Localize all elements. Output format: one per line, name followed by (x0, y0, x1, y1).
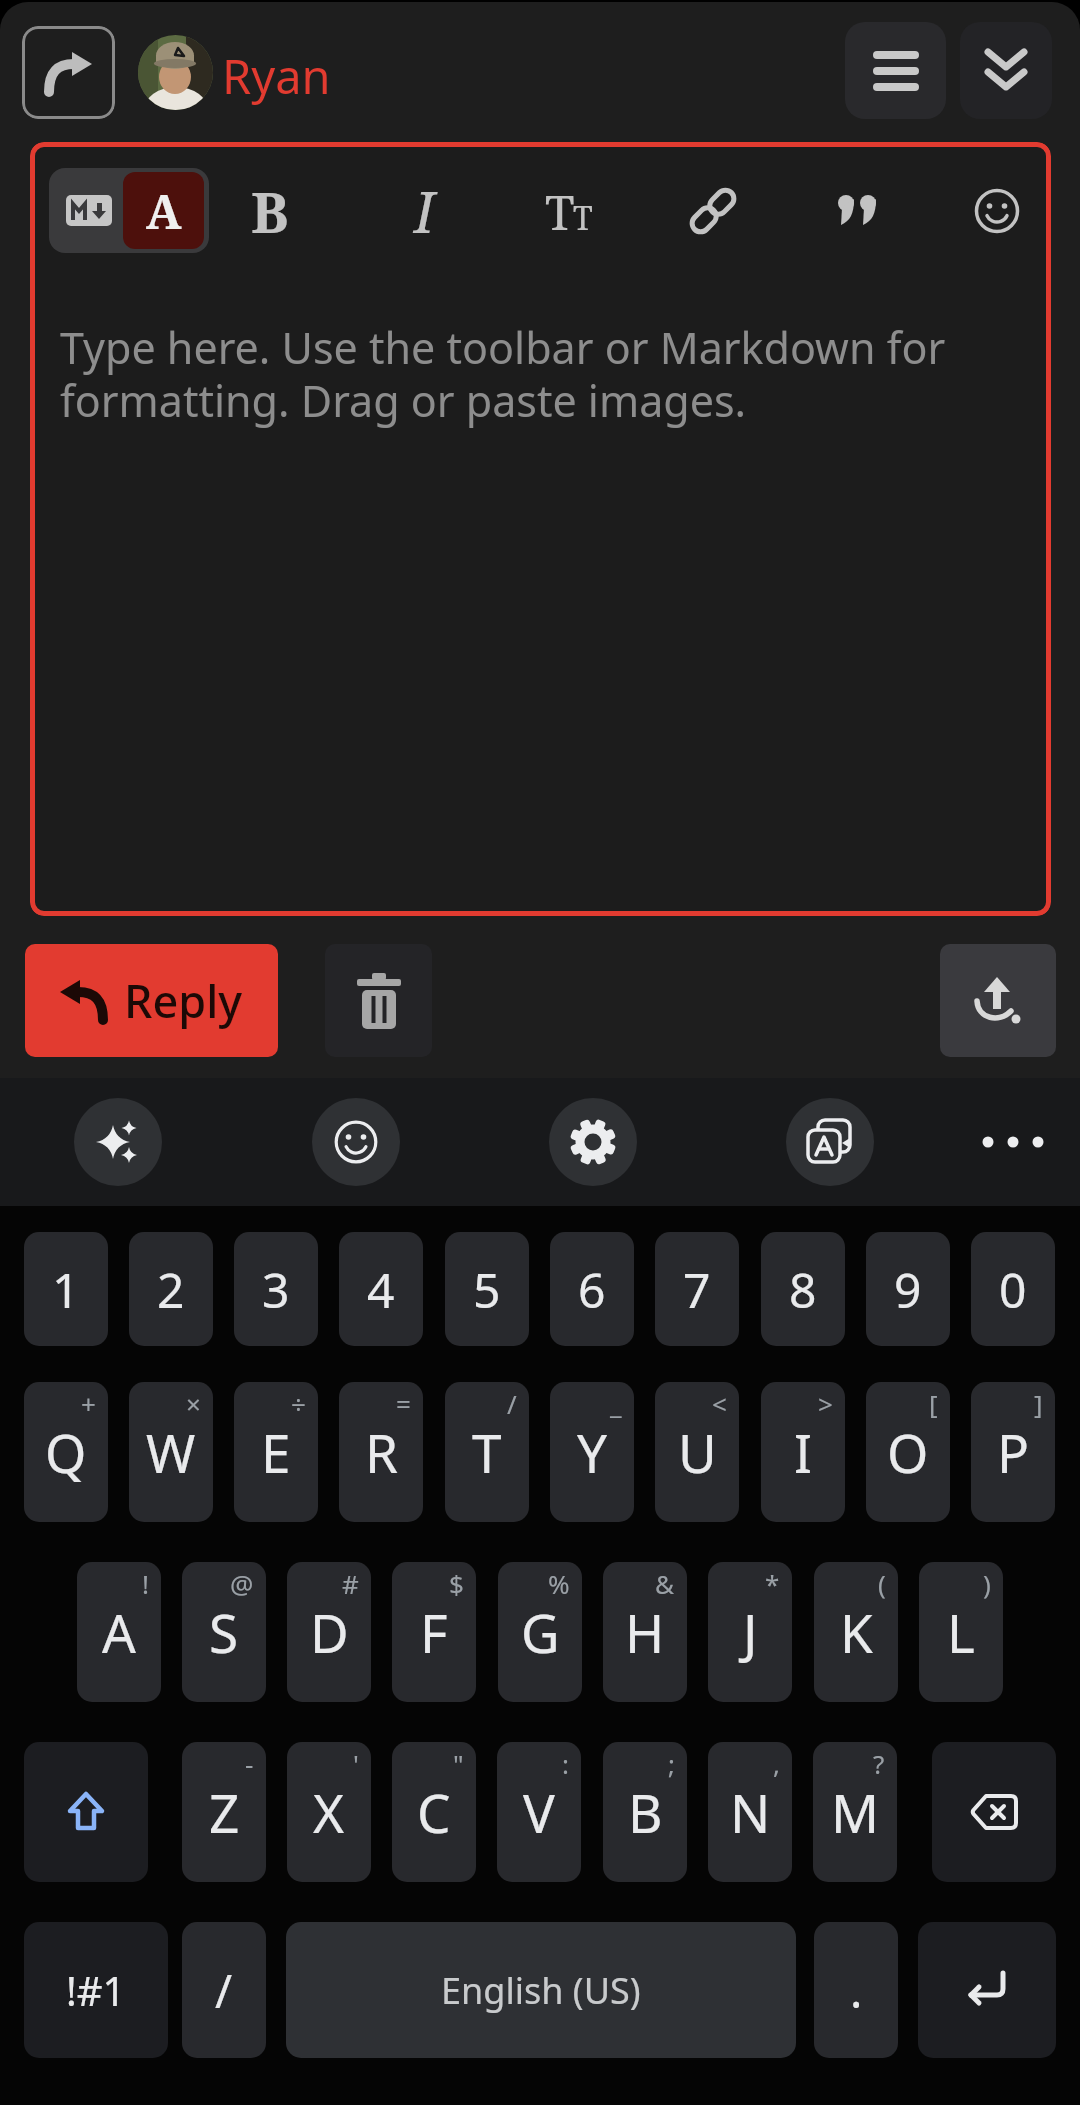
staticText: ] (1034, 1386, 1043, 1421)
button[interactable]: 0 (971, 1232, 1055, 1346)
button[interactable] (786, 1098, 874, 1186)
button[interactable] (138, 35, 213, 110)
button[interactable]: T (526, 167, 614, 255)
button[interactable]: C (392, 1742, 476, 1882)
button[interactable] (669, 167, 757, 255)
staticText: [ (929, 1386, 938, 1421)
button[interactable]: Y (550, 1382, 634, 1522)
button[interactable] (940, 944, 1056, 1057)
button[interactable]: 1 (24, 1232, 108, 1346)
staticText: 1 (52, 1257, 80, 1322)
staticText: G (521, 1596, 560, 1668)
button[interactable]: P (971, 1382, 1055, 1522)
button[interactable] (845, 22, 946, 119)
staticText: 4 (367, 1257, 395, 1322)
button[interactable]: F (392, 1562, 476, 1702)
staticText: 5 (473, 1257, 501, 1322)
button[interactable]: S (182, 1562, 266, 1702)
button[interactable] (953, 167, 1041, 255)
button[interactable] (312, 1098, 400, 1186)
staticText: ) (983, 1566, 991, 1601)
button[interactable]: T (445, 1382, 529, 1522)
button[interactable]: G (498, 1562, 582, 1702)
staticText: _ (610, 1386, 622, 1421)
button[interactable] (24, 1742, 148, 1882)
button[interactable]: X (287, 1742, 371, 1882)
button[interactable]: I (380, 167, 468, 255)
staticText: L (947, 1596, 975, 1668)
button[interactable]: K (814, 1562, 898, 1702)
button[interactable]: . (814, 1922, 898, 2058)
button[interactable]: 3 (234, 1232, 318, 1346)
button[interactable]: Z (182, 1742, 266, 1882)
button[interactable]: 8 (761, 1232, 845, 1346)
staticText: A (102, 1596, 136, 1668)
staticText: . (850, 1959, 863, 2022)
button[interactable] (932, 1742, 1056, 1882)
staticText: + (81, 1386, 96, 1421)
staticText: English (US) (441, 1966, 641, 2015)
button[interactable] (22, 26, 115, 119)
staticText: E (261, 1416, 291, 1488)
button[interactable] (74, 1098, 162, 1186)
staticText: 6 (578, 1257, 606, 1322)
button[interactable]: Reply (25, 944, 278, 1057)
staticText: , (773, 1746, 780, 1781)
button[interactable]: 2 (129, 1232, 213, 1346)
staticText: B (628, 1776, 663, 1848)
staticText: C (417, 1776, 451, 1848)
button[interactable]: L (919, 1562, 1003, 1702)
staticText: I (794, 1416, 812, 1488)
staticText: ; (668, 1746, 675, 1781)
staticText: R (365, 1416, 398, 1488)
staticText: X (313, 1776, 345, 1848)
button[interactable] (918, 1922, 1056, 2058)
button[interactable] (325, 944, 432, 1057)
button[interactable]: Q (24, 1382, 108, 1522)
button[interactable]: 7 (655, 1232, 739, 1346)
staticText: ÷ (291, 1386, 306, 1421)
staticText: Type here. Use the toolbar or Markdown f… (60, 318, 946, 429)
button[interactable]: M (813, 1742, 897, 1882)
button[interactable]: W (129, 1382, 213, 1522)
staticText: W (146, 1416, 196, 1488)
button[interactable]: Ryan (222, 44, 331, 108)
staticText: ( (878, 1566, 886, 1601)
button[interactable]: A (77, 1562, 161, 1702)
staticText: % (548, 1566, 570, 1601)
staticText: @ (230, 1566, 254, 1601)
button[interactable]: D (287, 1562, 371, 1702)
button[interactable]: B (226, 167, 314, 255)
button[interactable]: I (761, 1382, 845, 1522)
button[interactable]: B (603, 1742, 687, 1882)
button[interactable] (813, 167, 901, 255)
staticText: D (310, 1596, 349, 1668)
button[interactable]: R (339, 1382, 423, 1522)
staticText: $ (449, 1566, 464, 1601)
button[interactable]: 5 (445, 1232, 529, 1346)
button[interactable]: 4 (339, 1232, 423, 1346)
button[interactable]: 6 (550, 1232, 634, 1346)
button[interactable]: N (708, 1742, 792, 1882)
button[interactable]: !#1 (24, 1922, 168, 2058)
staticText: # (342, 1566, 359, 1601)
button[interactable]: A (49, 168, 209, 253)
staticText: ? (873, 1746, 885, 1781)
staticText: B (251, 173, 289, 249)
button[interactable]: / (182, 1922, 266, 2058)
button[interactable] (960, 22, 1052, 119)
button[interactable]: J (708, 1562, 792, 1702)
staticText: U (678, 1416, 717, 1488)
button[interactable]: O (866, 1382, 950, 1522)
button[interactable]: V (497, 1742, 581, 1882)
button[interactable]: H (603, 1562, 687, 1702)
button[interactable]: 9 (866, 1232, 950, 1346)
button[interactable]: English (US) (286, 1922, 796, 2058)
button[interactable]: U (655, 1382, 739, 1522)
staticText: × (186, 1386, 201, 1421)
staticText: / (507, 1386, 517, 1421)
button[interactable]: E (234, 1382, 318, 1522)
button[interactable] (549, 1098, 637, 1186)
staticText: Z (209, 1776, 240, 1848)
button[interactable] (973, 1102, 1053, 1182)
